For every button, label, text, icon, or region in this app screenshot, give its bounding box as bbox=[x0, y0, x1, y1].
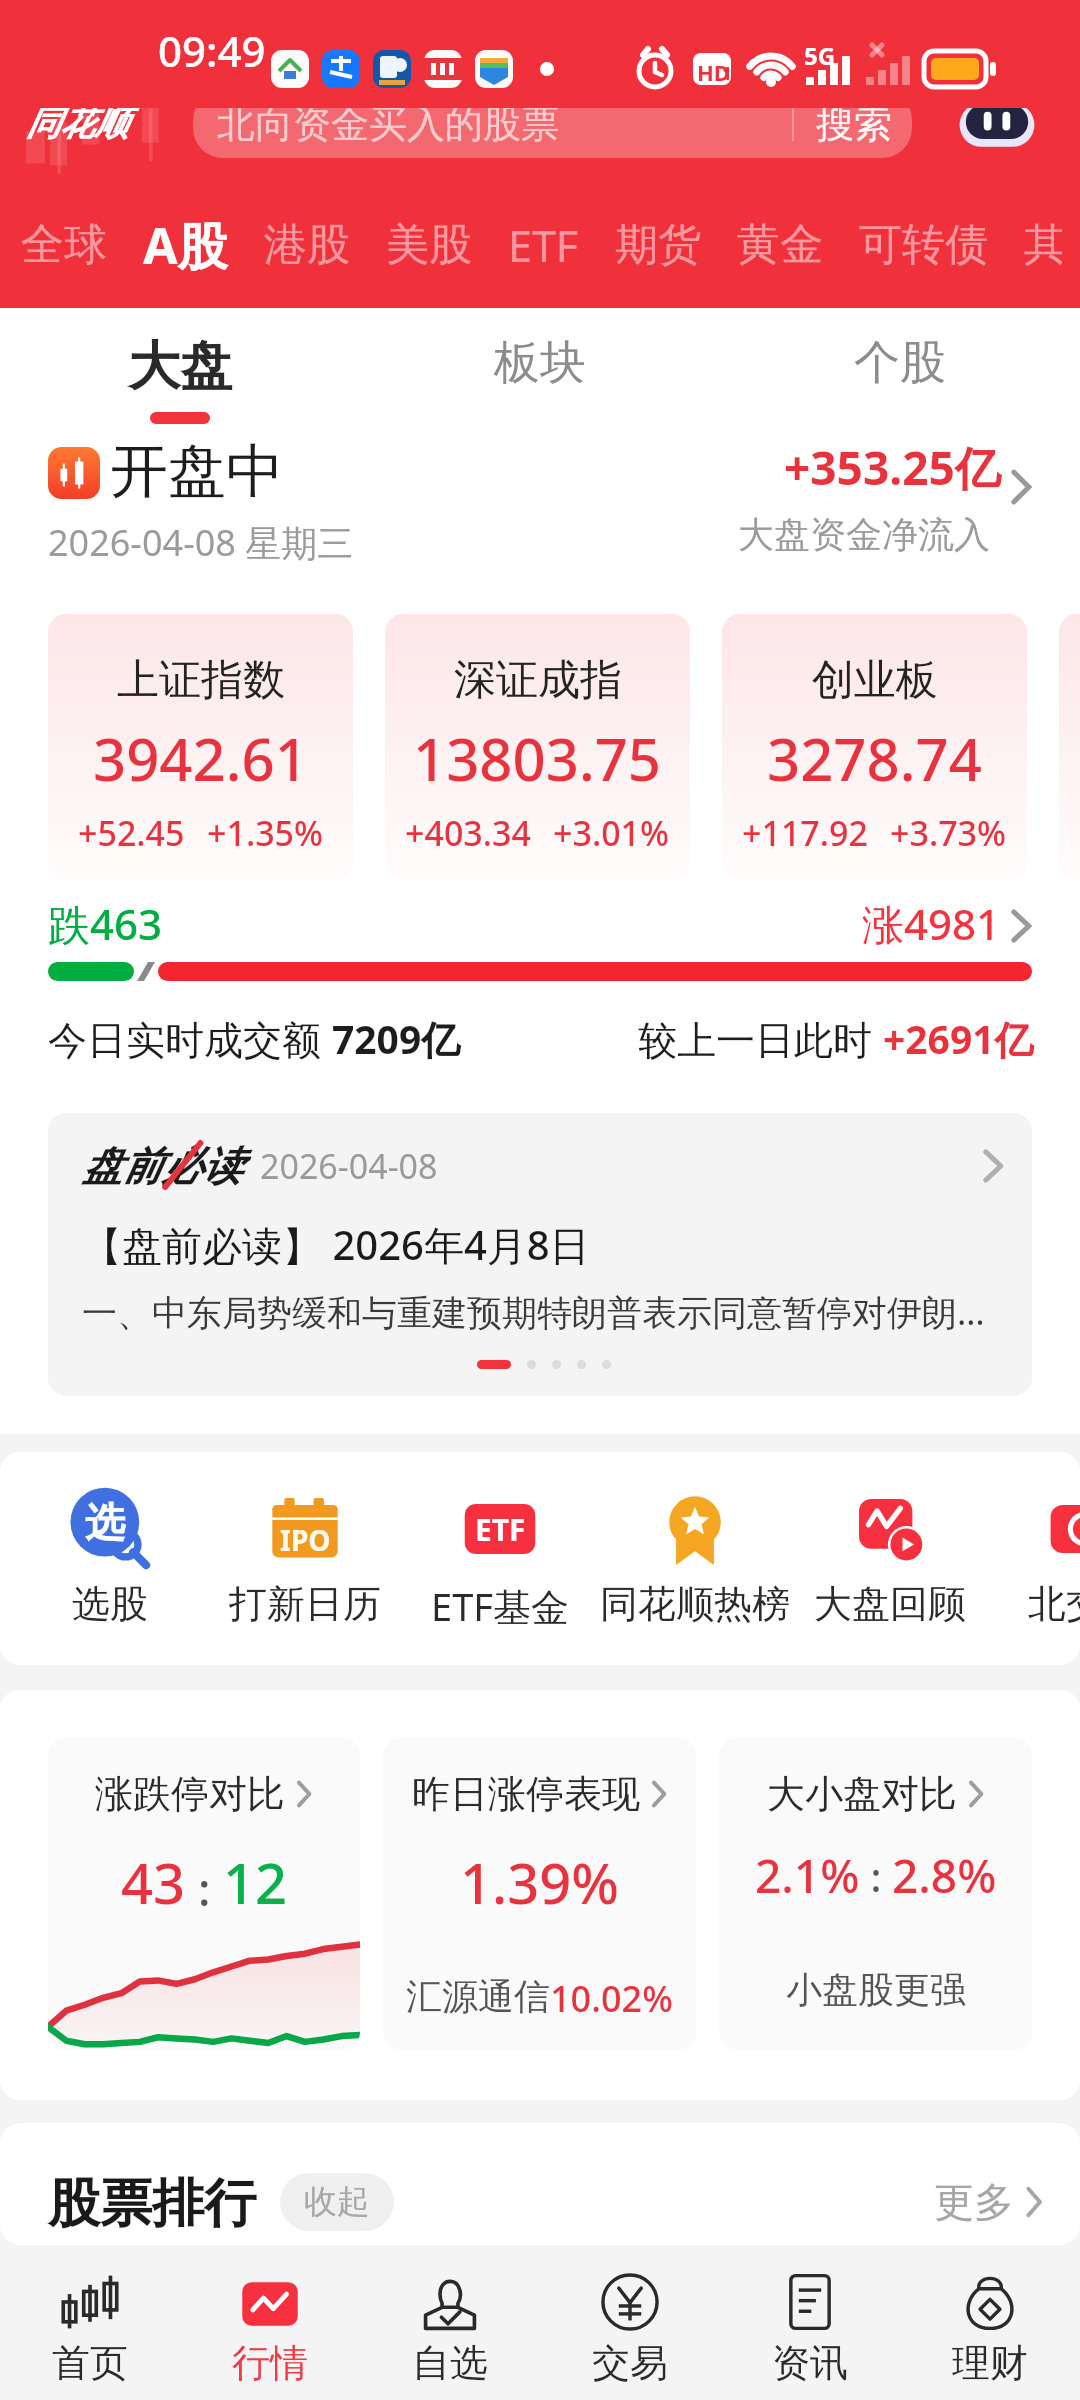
staticText: +3.01% bbox=[553, 810, 670, 856]
button[interactable]: 大盘回顾 bbox=[795, 1486, 985, 1628]
staticText: 美股 bbox=[386, 218, 472, 272]
staticText: 2026-04-08 星期三 bbox=[48, 518, 354, 567]
staticText: 小盘股更强 bbox=[786, 1967, 966, 2012]
staticText: +3.73% bbox=[890, 810, 1007, 856]
button[interactable]: 昨日涨停表现 bbox=[383, 1738, 696, 2050]
button[interactable]: A股 bbox=[125, 200, 246, 290]
staticText: 2.1% bbox=[755, 1844, 860, 1907]
button[interactable]: 交易 bbox=[540, 2245, 720, 2400]
staticText: 同花顺 bbox=[26, 102, 128, 145]
button[interactable]: IPO bbox=[210, 1486, 400, 1628]
button[interactable]: 资讯 bbox=[720, 2245, 900, 2400]
staticText: 行情 bbox=[232, 2339, 308, 2387]
button[interactable]: 深证成指 bbox=[385, 614, 690, 880]
staticText: +117.92 bbox=[742, 810, 868, 856]
button[interactable]: 行情 bbox=[180, 2245, 360, 2400]
staticText: ETF基金 bbox=[431, 1580, 569, 1632]
button[interactable]: 理财 bbox=[900, 2245, 1080, 2400]
button[interactable]: 北交所 bbox=[990, 1486, 1080, 1628]
button[interactable] bbox=[1059, 614, 1080, 880]
button[interactable]: 全球 bbox=[3, 200, 125, 290]
staticText: ETF bbox=[475, 1509, 526, 1550]
staticText: 板块 bbox=[494, 334, 586, 392]
button[interactable]: 收起 bbox=[280, 2173, 394, 2231]
staticText: 个股 bbox=[854, 334, 946, 392]
staticText: 09:49 bbox=[158, 22, 266, 79]
staticText: 涨跌停对比 bbox=[95, 1770, 285, 1818]
button[interactable]: 上证指数 bbox=[48, 614, 353, 880]
staticText: ETF bbox=[508, 216, 579, 275]
staticText: +353.25亿 bbox=[784, 436, 1001, 499]
staticText: 涨4981 bbox=[862, 895, 1001, 952]
button[interactable]: 创业板 bbox=[722, 614, 1027, 880]
staticText: 大盘回顾 bbox=[814, 1580, 966, 1628]
staticText: 5G bbox=[804, 39, 836, 72]
staticText: HD bbox=[697, 57, 730, 87]
staticText: 12 bbox=[223, 1844, 288, 1920]
button[interactable]: ETF bbox=[490, 200, 597, 290]
staticText: 【盘前必读】 2026年4月8日 bbox=[82, 1217, 590, 1272]
staticText: 今日实时成交额 bbox=[48, 1012, 332, 1065]
button[interactable]: 选 bbox=[15, 1486, 205, 1628]
button[interactable]: 可转债 bbox=[841, 200, 1006, 290]
button[interactable]: 其他 bbox=[1006, 200, 1080, 290]
button[interactable]: 同花顺热榜 bbox=[600, 1486, 790, 1628]
staticText: 7209亿 bbox=[332, 1012, 461, 1065]
staticText: 首页 bbox=[52, 2339, 128, 2387]
staticText: 一、中东局势缓和与重建预期特朗普表示同意暂停对伊朗… bbox=[82, 1288, 985, 1336]
staticText: 收起 bbox=[304, 2181, 370, 2223]
staticText: A股 bbox=[143, 211, 228, 279]
button[interactable]: AI assistant bbox=[958, 86, 1036, 164]
staticText: 10.02% bbox=[550, 1974, 673, 2023]
button[interactable]: 黄金 bbox=[719, 200, 841, 290]
staticText: 选股 bbox=[72, 1580, 148, 1628]
button[interactable]: 大小盘对比 bbox=[719, 1738, 1032, 2050]
button[interactable]: 港股 bbox=[246, 200, 368, 290]
staticText: +52.45 bbox=[78, 810, 185, 856]
staticText: 3942.61 bbox=[93, 719, 308, 798]
staticText: 股票排行 bbox=[48, 2171, 256, 2237]
staticText: 创业板 bbox=[812, 654, 938, 707]
button[interactable]: 板块 bbox=[360, 308, 720, 428]
button[interactable]: 北向资金买入的股票 bbox=[193, 90, 912, 158]
button[interactable]: 大盘 bbox=[0, 308, 360, 428]
staticText: 北向资金买入的股票 bbox=[217, 100, 559, 148]
button[interactable]: 自选 bbox=[360, 2245, 540, 2400]
staticText: 港股 bbox=[264, 218, 350, 272]
button[interactable]: 首页 bbox=[0, 2245, 180, 2400]
button[interactable]: ETF bbox=[405, 1486, 595, 1632]
staticText: 43 bbox=[121, 1844, 186, 1920]
button[interactable]: 美股 bbox=[368, 200, 490, 290]
staticText: 理财 bbox=[952, 2339, 1028, 2387]
staticText: 2.8% bbox=[892, 1844, 997, 1907]
button[interactable]: 个股 bbox=[720, 308, 1080, 428]
staticText: : bbox=[860, 1849, 892, 1903]
staticText: 更多 bbox=[934, 2177, 1014, 2227]
button[interactable]: 跌463 bbox=[0, 892, 1080, 952]
staticText: 上证指数 bbox=[117, 654, 285, 707]
staticText: 打新日历 bbox=[229, 1580, 381, 1628]
button[interactable]: 开盘中 bbox=[0, 440, 1080, 560]
button[interactable]: 盘前必读 bbox=[48, 1113, 1032, 1396]
button[interactable]: 更多 bbox=[934, 2177, 1044, 2227]
staticText: 大小盘对比 bbox=[767, 1770, 957, 1818]
staticText: 开盘中 bbox=[110, 435, 284, 508]
staticText: 3278.74 bbox=[767, 719, 982, 798]
staticText: 汇源通信 bbox=[406, 1974, 550, 2019]
staticText: 北交所 bbox=[1028, 1580, 1080, 1628]
staticText: 交易 bbox=[592, 2339, 668, 2387]
staticText: 可转债 bbox=[859, 218, 988, 272]
staticText: 全球 bbox=[21, 218, 107, 272]
staticText: 盘前必读 bbox=[82, 1141, 242, 1191]
button[interactable]: 期货 bbox=[597, 200, 719, 290]
staticText: 跌463 bbox=[48, 895, 163, 952]
staticText: 选 bbox=[85, 1497, 125, 1547]
staticText: 资讯 bbox=[772, 2339, 848, 2387]
staticText: 2026-04-08 bbox=[260, 1143, 438, 1189]
staticText: 昨日涨停表现 bbox=[412, 1770, 640, 1818]
staticText: 自选 bbox=[412, 2339, 488, 2387]
staticText: +403.34 bbox=[405, 810, 531, 856]
staticText: 大盘 bbox=[128, 334, 232, 400]
staticText: 13803.75 bbox=[413, 719, 662, 798]
button[interactable]: 涨跌停对比 bbox=[48, 1738, 360, 2050]
